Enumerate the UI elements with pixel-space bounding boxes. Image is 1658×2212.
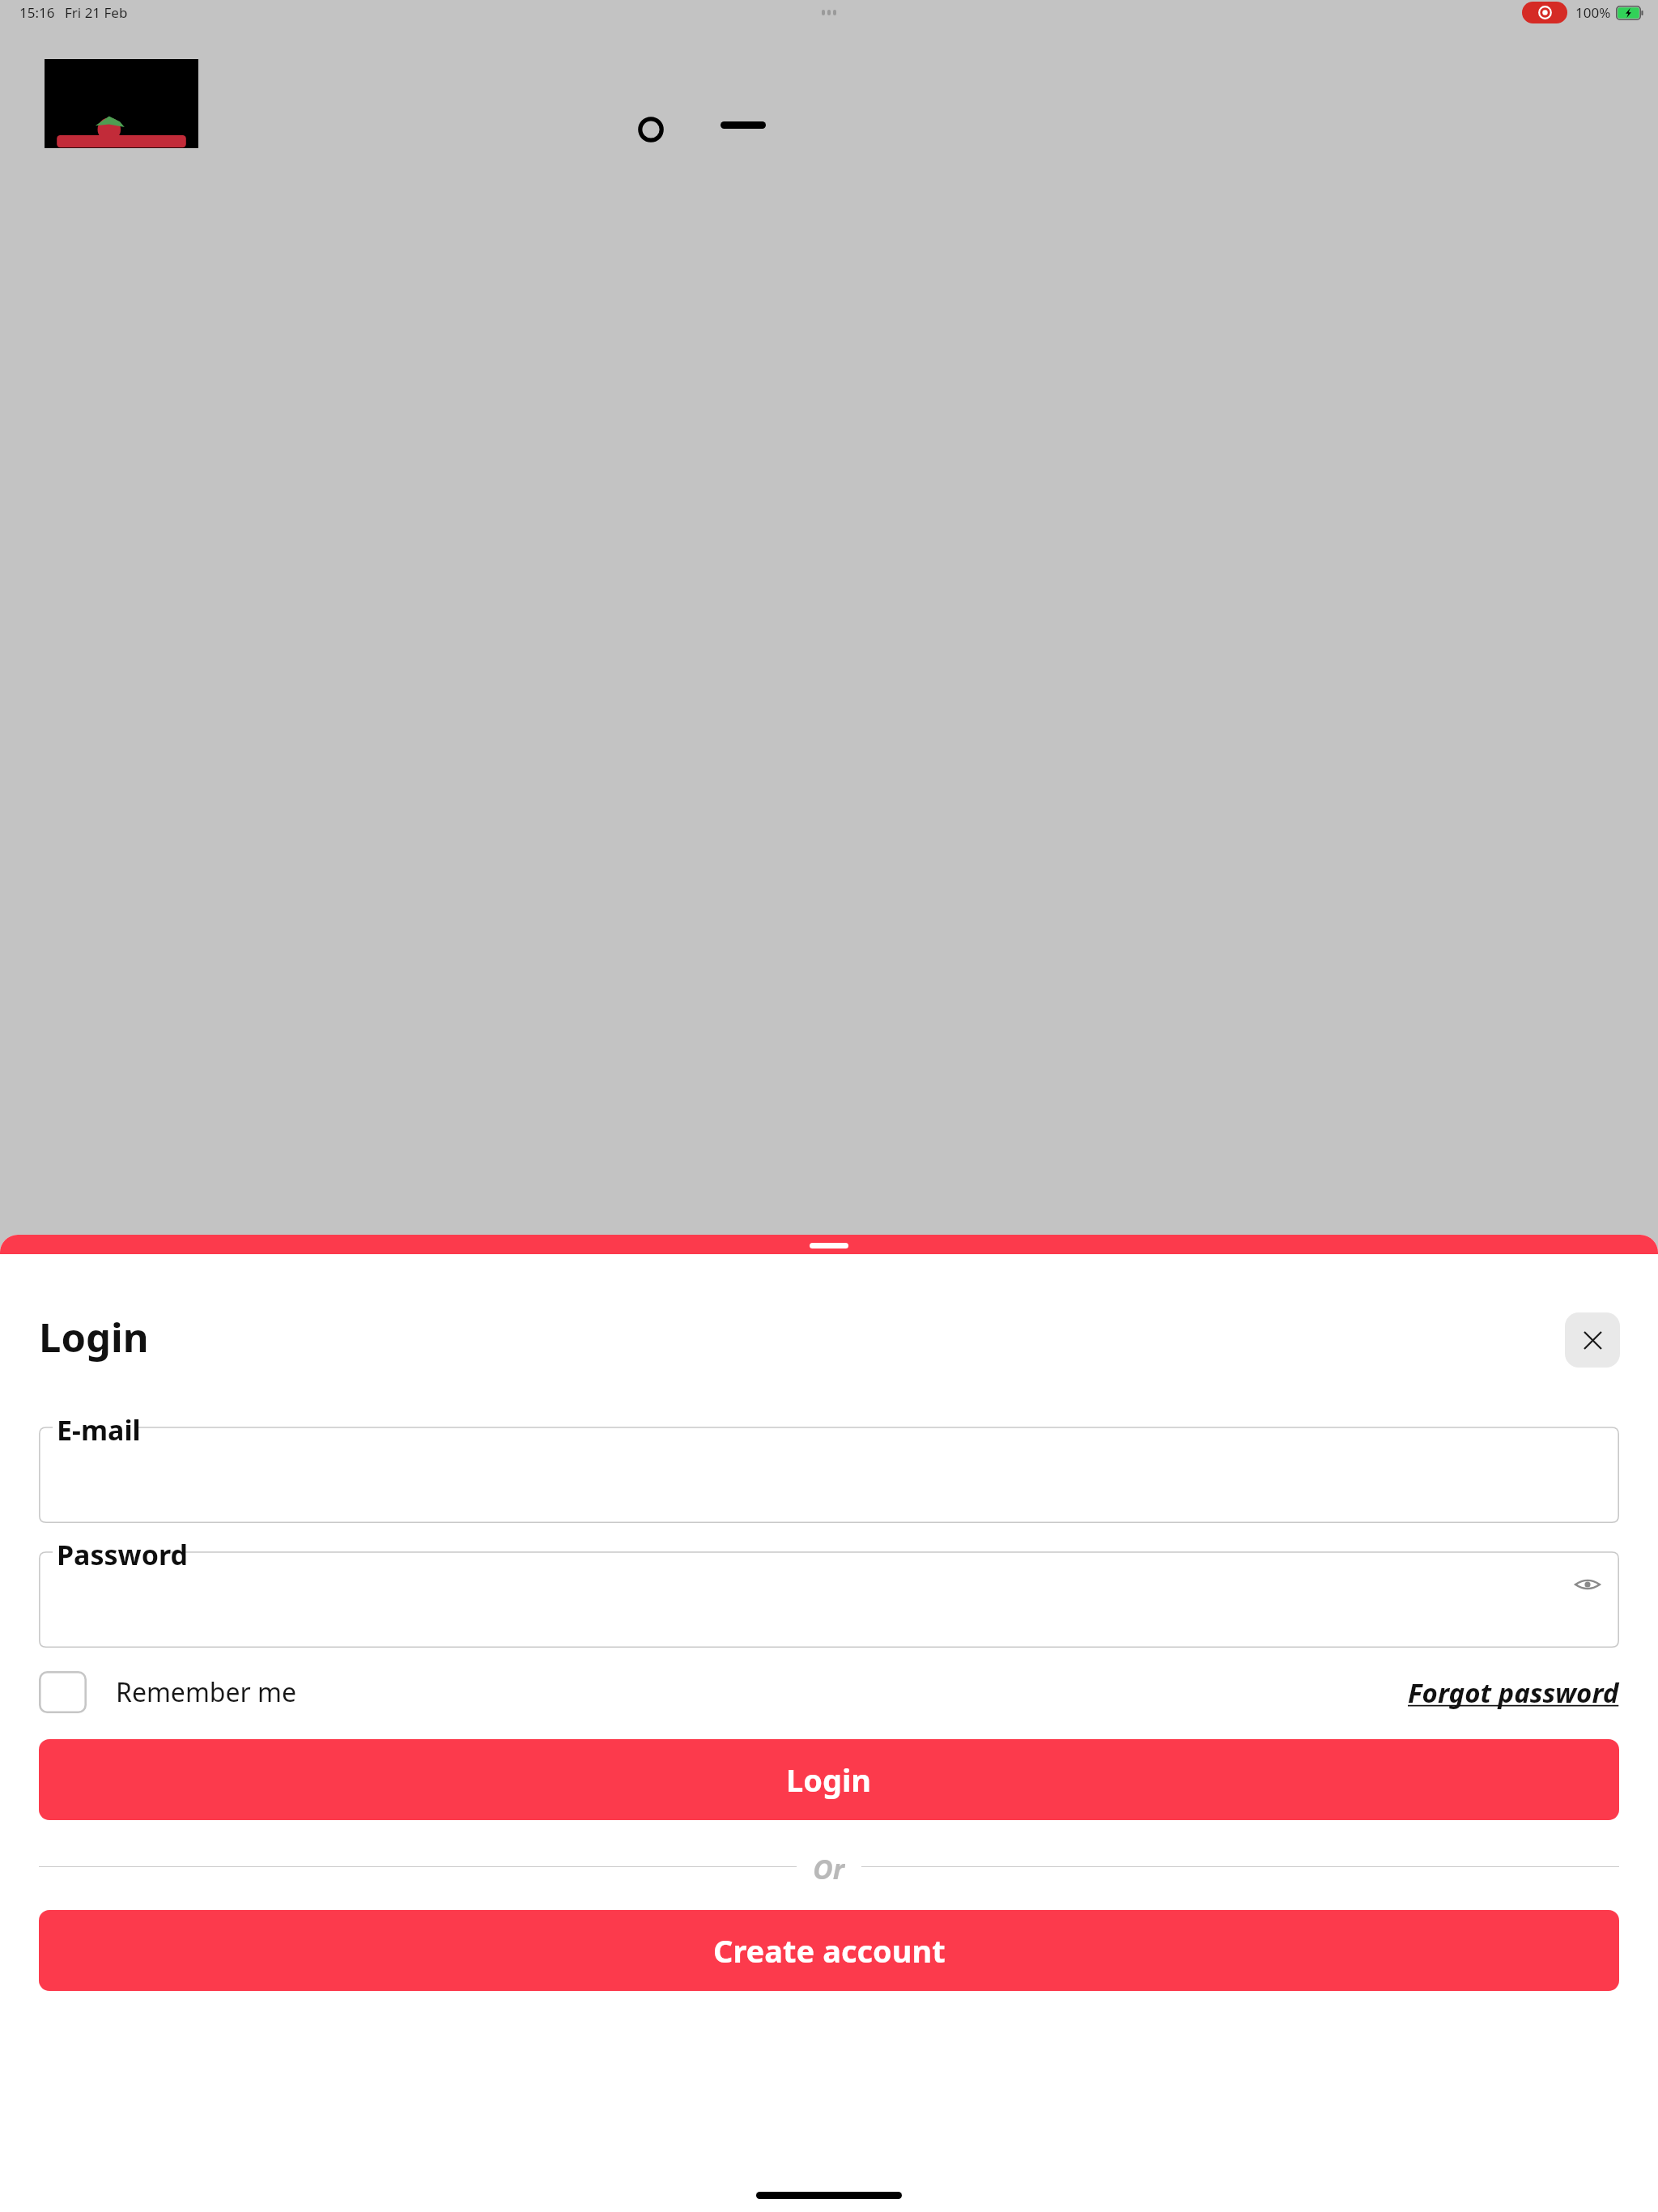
button[interactable]: Remember me [39,1671,297,1713]
button[interactable]: Forgot password [1408,1674,1619,1711]
button[interactable]: Password [39,1545,1619,1648]
staticText: Fri 21 Feb [65,3,128,22]
button[interactable]: Close [1565,1312,1620,1368]
staticText: Create account [713,1929,946,1972]
button[interactable]: Show password [1569,1566,1606,1603]
staticText: Login [786,1759,872,1801]
staticText: Or [813,1850,845,1882]
staticText: Remember me [116,1674,297,1710]
staticText: E-mail [57,1411,141,1448]
button[interactable]: Search [635,113,667,146]
button[interactable]: Login [39,1739,1619,1820]
staticText: 15:16 [19,3,55,22]
button[interactable]: E-mail [39,1420,1619,1523]
staticText: 100% [1575,3,1611,22]
button[interactable]: Menu [721,120,766,144]
button[interactable]: Create account [39,1910,1619,1991]
staticText: Password [57,1536,188,1573]
staticText: Login [39,1310,149,1364]
